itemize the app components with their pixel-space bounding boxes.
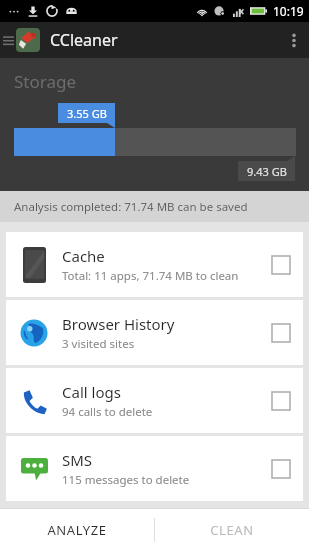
- staticText: 94 calls to delete: [62, 404, 153, 420]
- button[interactable]: Open navigation drawer: [0, 22, 16, 58]
- button[interactable]: Select Cache: [259, 232, 303, 297]
- staticText: 3 visited sites: [62, 336, 135, 352]
- staticText: CLEAN: [210, 521, 254, 539]
- button[interactable]: Select Browser History: [259, 300, 303, 365]
- staticText: 115 messages to delete: [62, 472, 190, 488]
- staticText: SMS: [62, 450, 93, 470]
- button[interactable]: More options: [279, 22, 309, 58]
- staticText: Call logs: [62, 382, 121, 402]
- button[interactable]: SMS: [6, 436, 303, 501]
- staticText: Browser History: [62, 314, 175, 334]
- staticText: ANALYZE: [47, 521, 107, 539]
- staticText: CCleaner: [50, 29, 118, 51]
- staticText: Cache: [62, 246, 105, 266]
- staticText: 9.43 GB: [247, 164, 287, 179]
- button[interactable]: Browser History: [6, 300, 303, 365]
- staticText: Total: 11 apps, 71.74 MB to clean: [62, 268, 239, 284]
- button[interactable]: Cache: [6, 232, 303, 297]
- button[interactable]: Call logs: [6, 368, 303, 433]
- staticText: Storage: [14, 70, 77, 93]
- staticText: 10:19: [273, 3, 304, 19]
- button[interactable]: Select Call logs: [259, 368, 303, 433]
- button[interactable]: CLEAN: [155, 509, 309, 550]
- staticText: Analysis completed: 71.74 MB can be save…: [14, 199, 248, 215]
- staticText: 3.55 GB: [67, 106, 107, 121]
- button[interactable]: Select SMS: [259, 436, 303, 501]
- button[interactable]: ANALYZE: [0, 509, 154, 550]
